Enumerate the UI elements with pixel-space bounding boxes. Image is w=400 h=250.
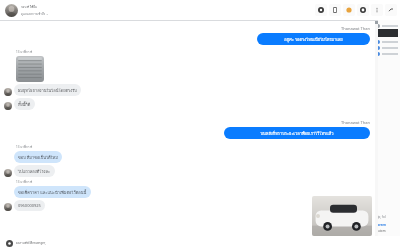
staticText: ดูแลและการเข้าถึง ⌄	[21, 12, 49, 17]
button[interactable]: More options	[371, 4, 383, 16]
button[interactable]: ผลงานที่นี่ Messenger,	[6, 240, 46, 247]
button[interactable]: Car photo	[312, 196, 372, 236]
button[interactable]: บนหลังก็ทราบระยะเวลาพื่อยเร่าไว้โทรแล้ว	[224, 127, 370, 139]
button[interactable]: Reading list	[329, 4, 341, 16]
staticText: รอบ ที่ ให้ยืม	[21, 5, 38, 10]
button[interactable]: Extensions	[315, 4, 327, 16]
staticText: ผมยุทโธยาสงานในไลน์โดยตรงรับ	[18, 87, 77, 93]
button[interactable]: Photo attachment	[16, 56, 44, 82]
staticText: Screen	[376, 223, 387, 227]
staticText: 13 นาฬิกา ที่	[16, 180, 33, 185]
staticText: 13 นาฬิกา ที่	[16, 50, 33, 55]
button[interactable]: ขอเช็คราคา และแนะนำเพิ่มต่อไว้ตอนนี้	[14, 186, 91, 198]
button[interactable]: ผมยุทโธยาสงานในไลน์โดยตรงรับ	[14, 84, 81, 96]
staticText: อยู่ค่ะ รอตรงไหนเนี่ยไม่โทรมาเลย	[284, 36, 343, 42]
staticText: ขอบ ที่มาขอเป็นได้ใหม่	[18, 154, 58, 160]
button[interactable]: ทั้งนี้ก็ดี	[14, 98, 35, 110]
staticText: ผลงานที่นี่ Messenger,	[16, 241, 46, 246]
staticText: 0960000925	[18, 203, 41, 208]
button[interactable]: อยู่ค่ะ รอตรงไหนเนี่ยไม่โทรมาเลย	[257, 33, 370, 45]
button[interactable]: Minimize	[385, 4, 397, 16]
button[interactable]: รอบ ที่ ให้ยืม	[3, 2, 51, 19]
staticText: 13 นาฬิกา ที่	[16, 145, 33, 150]
button[interactable]: Profile	[357, 4, 369, 16]
staticText: Tip, fol	[376, 215, 386, 219]
button[interactable]: 0960000925	[14, 200, 45, 211]
staticText: ขอเช็คราคา และแนะนำเพิ่มต่อไว้ตอนนี้	[18, 189, 87, 195]
button[interactable]: ไปแถวลองที่โรงละ	[14, 165, 55, 177]
staticText: บนหลังก็ทราบระยะเวลาพื่อยเร่าไว้โทรแล้ว	[260, 130, 334, 136]
button[interactable]: Bookmark	[343, 4, 355, 16]
button[interactable]	[376, 39, 398, 45]
staticText: Thanawat Than	[341, 120, 370, 125]
button[interactable]	[376, 45, 398, 51]
staticText: ทั้งนี้ก็ดี	[18, 101, 31, 107]
staticText: ไปแถวลองที่โรงละ	[18, 168, 51, 174]
button[interactable]	[376, 51, 398, 57]
staticText: Thanawat Than	[341, 26, 370, 31]
staticText: Autom	[376, 229, 386, 233]
button[interactable]	[376, 23, 398, 29]
button[interactable]: ขอบ ที่มาขอเป็นได้ใหม่	[14, 151, 62, 163]
